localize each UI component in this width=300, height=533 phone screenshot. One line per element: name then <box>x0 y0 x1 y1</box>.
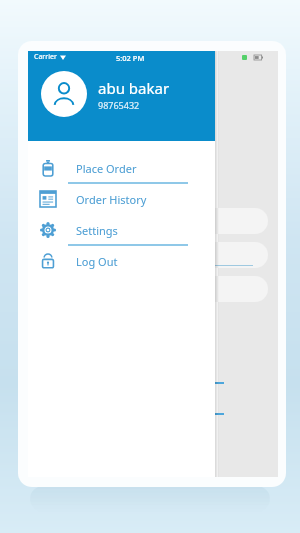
staticText: Order History <box>76 192 147 207</box>
button[interactable]: AR <box>178 208 268 234</box>
staticText: Place Order <box>76 161 137 176</box>
staticText: 98765432 <box>98 99 140 111</box>
staticText: Carrier <box>34 52 57 62</box>
button[interactable]: abu bakar <box>41 71 215 117</box>
button[interactable]: AR <box>178 276 268 302</box>
staticText: 5:02 PM <box>116 53 145 63</box>
button[interactable]: Settings <box>28 216 215 247</box>
staticText: abu bakar <box>98 78 170 98</box>
button[interactable]: Order History <box>28 185 215 216</box>
staticText: Settings <box>76 223 118 238</box>
button[interactable]: Log Out <box>28 247 215 278</box>
staticText: Log Out <box>76 254 118 269</box>
button[interactable]: Place Order <box>28 154 215 185</box>
button[interactable]: AR <box>178 242 268 268</box>
